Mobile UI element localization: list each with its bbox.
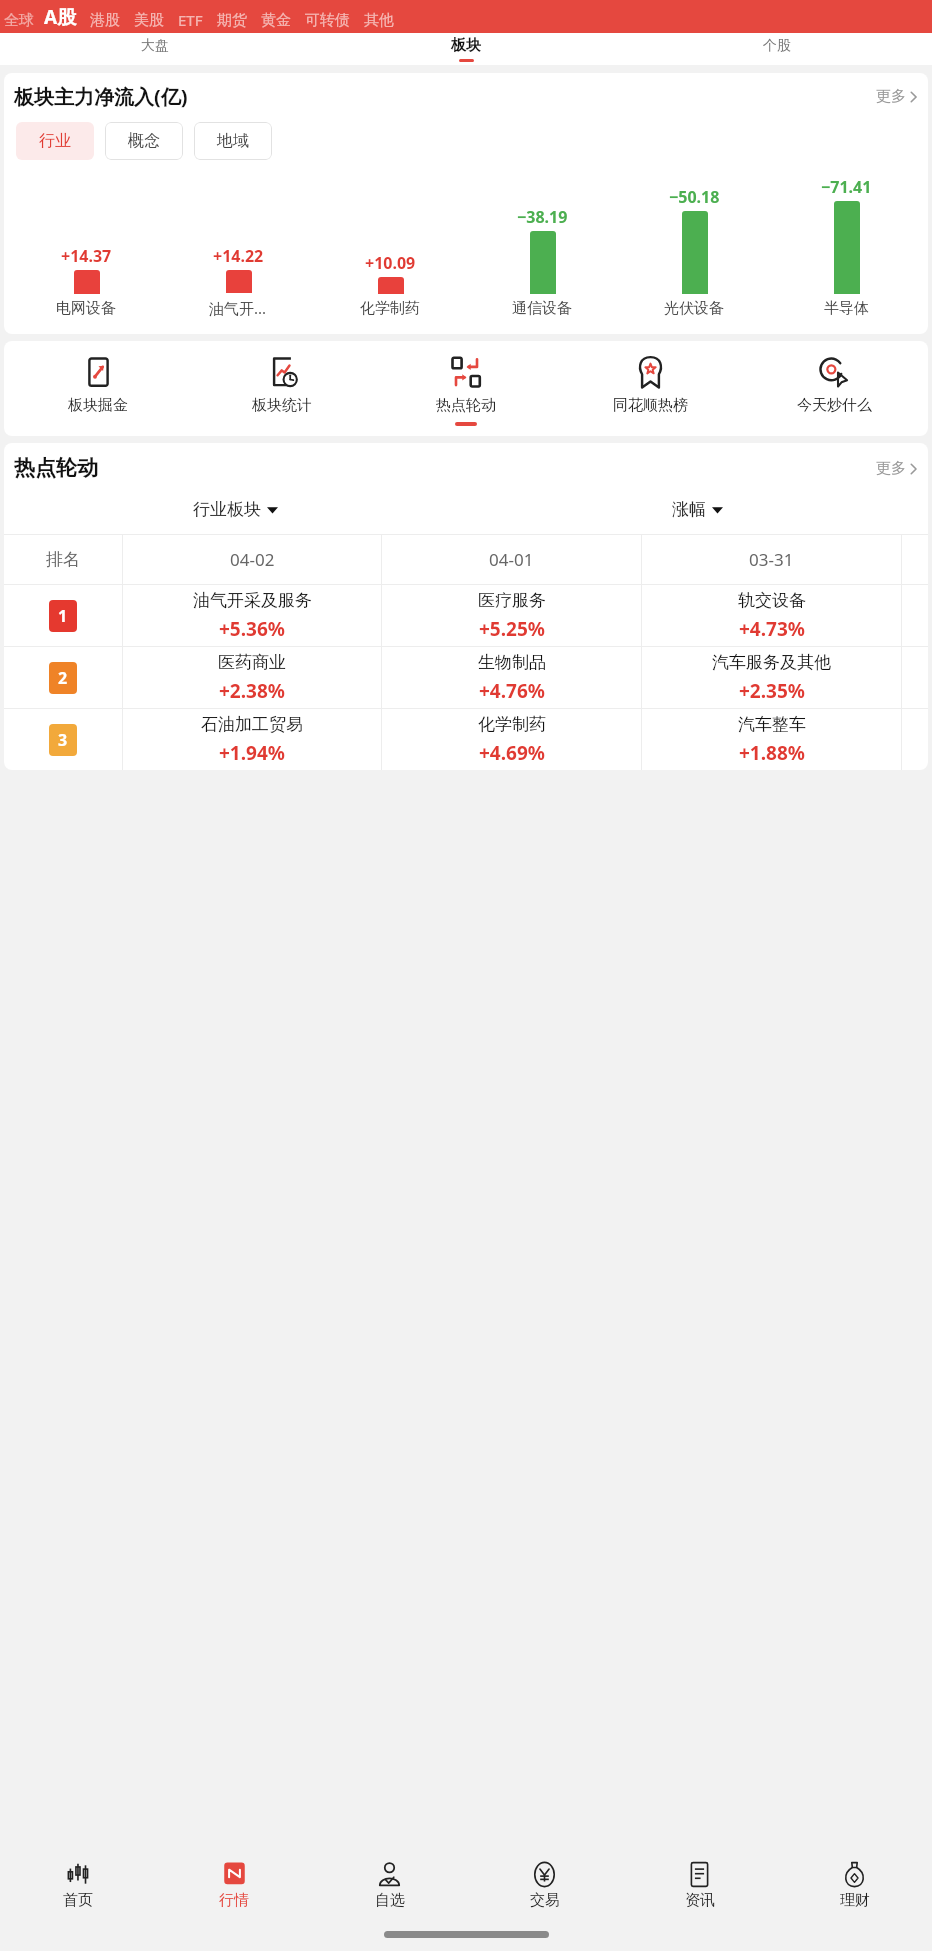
button[interactable]: 自选: [312, 1861, 467, 1917]
staticText: 可转债: [305, 11, 350, 30]
staticText: +5.25%: [479, 616, 545, 642]
staticText: 3: [58, 729, 68, 751]
button[interactable]: 大盘: [0, 33, 310, 65]
button[interactable]: 更多: [876, 459, 918, 478]
staticText: 黄金: [261, 11, 291, 30]
button[interactable]: 资讯: [622, 1861, 777, 1917]
staticText: 生物制品: [478, 652, 546, 673]
button[interactable]: 涨幅: [672, 499, 723, 520]
staticText: 半导体: [824, 299, 869, 318]
staticText: 石油加工贸易: [201, 714, 303, 735]
button[interactable]: ETF: [171, 10, 210, 30]
staticText: 汽车服务及其他: [712, 652, 831, 673]
button[interactable]: 交易: [467, 1861, 622, 1917]
staticText: 大盘: [141, 37, 169, 55]
button[interactable]: 其他: [357, 11, 401, 30]
button[interactable]: 美股: [127, 11, 171, 30]
staticText: 化学制药: [478, 714, 546, 735]
button[interactable]: 板块统计: [190, 355, 374, 426]
button[interactable]: 同花顺热榜: [558, 355, 742, 426]
staticText: 轨交设备: [738, 590, 806, 611]
button[interactable]: 板块掘金: [6, 355, 190, 426]
staticText: +10.09: [365, 252, 416, 274]
button[interactable]: 黄金: [254, 11, 298, 30]
button[interactable]: 行业: [16, 122, 94, 160]
staticText: 首页: [63, 1891, 93, 1910]
staticText: 行情: [219, 1891, 249, 1910]
staticText: −71.41: [821, 176, 872, 198]
staticText: 行业板块: [193, 499, 261, 520]
staticText: 个股: [763, 37, 791, 55]
button[interactable]: +10.09: [314, 176, 466, 318]
staticText: 更多: [876, 87, 906, 106]
button[interactable]: 概念: [105, 122, 183, 160]
staticText: 汽车整车: [738, 714, 806, 735]
button[interactable]: −38.19: [466, 176, 618, 318]
button[interactable]: 2: [4, 647, 928, 708]
staticText: 医药商业: [218, 652, 286, 673]
button[interactable]: −50.18: [618, 176, 770, 318]
button[interactable]: 可转债: [298, 11, 357, 30]
staticText: 油气开采及服务: [193, 590, 312, 611]
button[interactable]: +14.37: [10, 176, 162, 318]
staticText: ETF: [178, 10, 203, 30]
staticText: A股: [44, 4, 77, 30]
staticText: 自选: [375, 1891, 405, 1910]
button[interactable]: 期货: [210, 11, 254, 30]
button[interactable]: 理财: [777, 1861, 932, 1917]
staticText: 板块掘金: [68, 396, 128, 415]
button[interactable]: 今天炒什么: [742, 355, 926, 426]
staticText: 板块: [451, 36, 481, 55]
staticText: 排名: [46, 549, 80, 570]
staticText: 04-01: [489, 548, 534, 571]
button[interactable]: 3: [4, 709, 928, 770]
button[interactable]: 地域: [194, 122, 272, 160]
staticText: +1.94%: [219, 740, 285, 766]
staticText: 地域: [217, 131, 249, 151]
staticText: 油气开...: [209, 298, 267, 318]
staticText: 板块统计: [252, 396, 312, 415]
staticText: 今天炒什么: [797, 396, 872, 415]
staticText: 概念: [128, 131, 160, 151]
staticText: 光伏设备: [664, 299, 724, 318]
staticText: 2: [58, 667, 68, 689]
staticText: +4.76%: [479, 678, 545, 704]
button[interactable]: A股: [38, 4, 83, 30]
staticText: 热点轮动: [436, 396, 496, 415]
staticText: 交易: [530, 1891, 560, 1910]
button[interactable]: 更多: [876, 87, 918, 106]
staticText: 1: [58, 605, 68, 627]
button[interactable]: +14.22: [162, 175, 314, 318]
button[interactable]: 港股: [83, 11, 127, 30]
staticText: 港股: [90, 11, 120, 30]
button[interactable]: 全球: [0, 11, 38, 30]
staticText: 美股: [134, 11, 164, 30]
staticText: +14.22: [213, 245, 264, 267]
button[interactable]: 板块: [310, 33, 621, 65]
staticText: +2.35%: [739, 678, 805, 704]
staticText: 同花顺热榜: [613, 396, 688, 415]
staticText: +4.73%: [739, 616, 805, 642]
staticText: 医疗服务: [478, 590, 546, 611]
staticText: 其他: [364, 11, 394, 30]
button[interactable]: −71.41: [770, 176, 922, 318]
button[interactable]: 1: [4, 585, 928, 646]
staticText: 电网设备: [56, 299, 116, 318]
staticText: 涨幅: [672, 499, 706, 520]
staticText: −38.19: [517, 206, 568, 228]
staticText: 资讯: [685, 1891, 715, 1910]
staticText: 全球: [4, 11, 34, 30]
staticText: 行业: [39, 131, 71, 151]
button[interactable]: 首页: [0, 1861, 156, 1917]
staticText: 理财: [840, 1891, 870, 1910]
button[interactable]: 热点轮动: [374, 355, 558, 426]
staticText: −50.18: [669, 186, 720, 208]
staticText: +1.88%: [739, 740, 805, 766]
button[interactable]: 行情: [156, 1861, 312, 1917]
staticText: 化学制药: [360, 299, 420, 318]
button[interactable]: 个股: [621, 33, 932, 65]
staticText: 通信设备: [512, 299, 572, 318]
staticText: 板块主力净流入(亿): [14, 83, 188, 110]
staticText: 热点轮动: [14, 455, 98, 481]
button[interactable]: 行业板块: [193, 499, 278, 520]
